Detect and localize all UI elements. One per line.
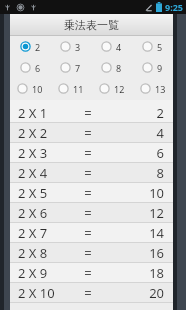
- button[interactable]: 8: [91, 57, 132, 78]
- staticText: 4: [102, 124, 164, 142]
- button[interactable]: 11: [50, 78, 91, 99]
- staticText: =: [74, 164, 102, 182]
- staticText: 2 X 10: [18, 284, 74, 302]
- staticText: 5: [157, 41, 163, 53]
- staticText: 16: [102, 244, 164, 262]
- staticText: 2 X 4: [18, 164, 74, 182]
- staticText: =: [74, 184, 102, 202]
- staticText: 乗法表一覧: [64, 18, 119, 32]
- staticText: 6: [102, 144, 164, 162]
- button[interactable]: 10: [10, 78, 50, 99]
- staticText: 8: [116, 62, 122, 74]
- staticText: 2 X 5: [18, 184, 74, 202]
- staticText: 11: [73, 83, 84, 95]
- button[interactable]: 7: [50, 57, 91, 78]
- button[interactable]: 6: [10, 57, 50, 78]
- button[interactable]: 2 X 7: [10, 223, 173, 242]
- staticText: 2 X 1: [18, 104, 74, 122]
- staticText: =: [74, 104, 102, 122]
- button[interactable]: 2 X 8: [10, 243, 173, 262]
- button[interactable]: 2 X 5: [10, 183, 173, 202]
- button[interactable]: 13: [132, 78, 173, 99]
- staticText: =: [74, 224, 102, 242]
- staticText: 2 X 8: [18, 244, 74, 262]
- staticText: =: [74, 144, 102, 162]
- button[interactable]: 9: [132, 57, 173, 78]
- staticText: 13: [155, 83, 166, 95]
- staticText: 20: [102, 284, 164, 302]
- staticText: =: [74, 124, 102, 142]
- staticText: 6: [35, 62, 41, 74]
- button[interactable]: 2 X 9: [10, 263, 173, 282]
- button[interactable]: 2 X 2: [10, 123, 173, 142]
- staticText: =: [74, 244, 102, 262]
- staticText: =: [74, 284, 102, 302]
- button[interactable]: 4: [91, 36, 132, 57]
- staticText: 12: [102, 204, 164, 222]
- staticText: 9: [157, 62, 163, 74]
- staticText: 2 X 6: [18, 204, 74, 222]
- staticText: 7: [75, 62, 81, 74]
- staticText: =: [74, 264, 102, 282]
- staticText: 2 X 2: [18, 124, 74, 142]
- staticText: 18: [102, 264, 164, 282]
- staticText: 4: [116, 41, 122, 53]
- staticText: 2: [102, 104, 164, 122]
- staticText: 3: [75, 41, 81, 53]
- button[interactable]: 2 X 4: [10, 163, 173, 182]
- staticText: 2 X 3: [18, 144, 74, 162]
- button[interactable]: 2 X 1: [10, 103, 173, 122]
- staticText: =: [74, 204, 102, 222]
- staticText: 10: [32, 83, 43, 95]
- button[interactable]: 2 X 10: [10, 283, 173, 302]
- button[interactable]: 2 X 3: [10, 143, 173, 162]
- button[interactable]: 3: [50, 36, 91, 57]
- button[interactable]: 12: [91, 78, 132, 99]
- staticText: 12: [114, 83, 125, 95]
- button[interactable]: 2: [10, 36, 50, 57]
- button[interactable]: 2 X 6: [10, 203, 173, 222]
- staticText: 8: [102, 164, 164, 182]
- staticText: 2 X 7: [18, 224, 74, 242]
- staticText: 10: [102, 184, 164, 202]
- staticText: 2 X 9: [18, 264, 74, 282]
- button[interactable]: 5: [132, 36, 173, 57]
- staticText: 9:25: [165, 1, 183, 13]
- staticText: 14: [102, 224, 164, 242]
- staticText: 2: [35, 41, 41, 53]
